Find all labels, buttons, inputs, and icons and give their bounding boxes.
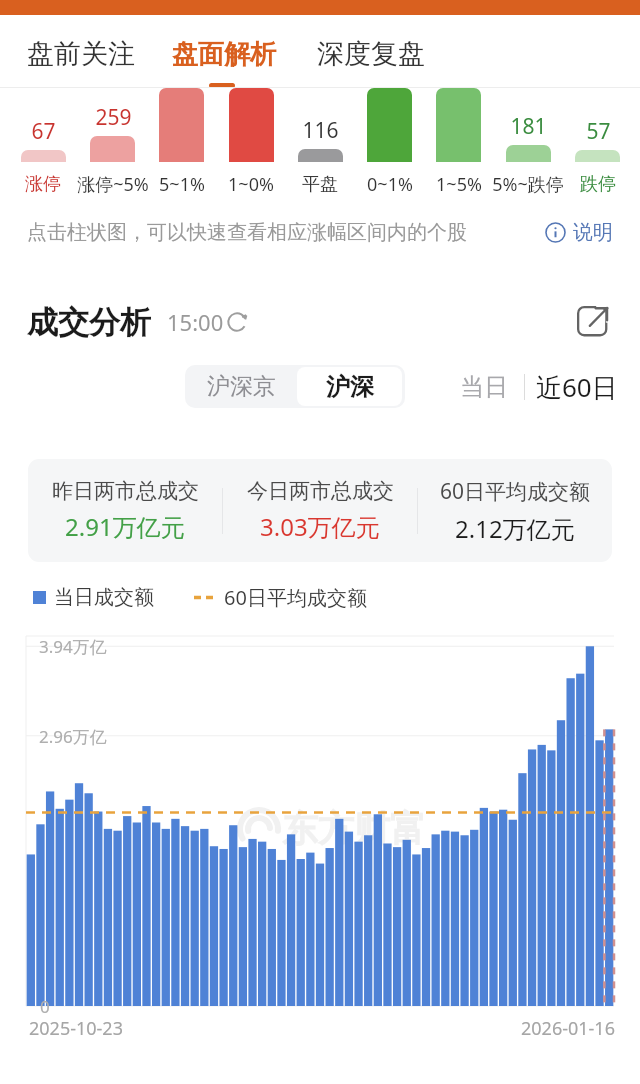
- staticText: 跌停: [580, 173, 616, 196]
- staticText: 60日平均成交额: [440, 477, 591, 506]
- button[interactable]: 深度复盘: [317, 30, 437, 78]
- staticText: 259: [95, 103, 132, 132]
- staticText: 0~1%: [367, 172, 413, 197]
- staticText: 点击柱状图，可以快速查看相应涨幅区间内的个股: [27, 220, 467, 245]
- button[interactable]: [9, 88, 78, 162]
- staticText: 盘前关注: [27, 37, 135, 71]
- staticText: 2.12万亿元: [455, 512, 575, 545]
- staticText: 东方财富: [282, 806, 426, 851]
- button[interactable]: 盘前关注: [27, 30, 147, 78]
- staticText: 2025-10-23: [29, 1016, 123, 1041]
- staticText: 沪深京: [207, 372, 276, 401]
- button[interactable]: [355, 88, 424, 162]
- staticText: 181: [510, 112, 547, 141]
- button[interactable]: 说明: [545, 220, 613, 245]
- staticText: 116: [302, 116, 339, 145]
- button[interactable]: [147, 88, 216, 162]
- staticText: 57: [586, 117, 611, 146]
- button[interactable]: [493, 88, 562, 162]
- staticText: 15:00: [167, 307, 224, 337]
- staticText: 3.94万亿: [39, 635, 107, 658]
- staticText: 2.96万亿: [39, 725, 107, 748]
- button[interactable]: Open in new window: [573, 302, 613, 342]
- button[interactable]: [216, 88, 285, 162]
- staticText: 说明: [573, 220, 613, 245]
- staticText: 1~0%: [228, 172, 274, 197]
- staticText: 平盘: [302, 173, 338, 196]
- staticText: 67: [31, 117, 56, 146]
- button[interactable]: [78, 88, 147, 162]
- staticText: 60日平均成交额: [224, 584, 367, 611]
- staticText: 涨停: [25, 173, 61, 196]
- button[interactable]: 近60日: [535, 367, 619, 407]
- staticText: 2.91万亿元: [65, 510, 185, 543]
- staticText: 1~5%: [436, 172, 482, 197]
- staticText: 沪深: [326, 372, 374, 402]
- button[interactable]: Refresh: [225, 310, 249, 334]
- staticText: 盘面解析: [172, 38, 276, 71]
- staticText: 近60日: [536, 369, 618, 405]
- staticText: 5~1%: [159, 172, 205, 197]
- button[interactable]: [286, 88, 355, 162]
- staticText: 深度复盘: [317, 37, 425, 71]
- button[interactable]: 当日: [455, 369, 513, 405]
- button[interactable]: 沪深京: [188, 367, 294, 406]
- button[interactable]: [424, 88, 493, 162]
- staticText: 成交分析: [27, 303, 151, 342]
- button[interactable]: 沪深: [297, 367, 402, 406]
- staticText: 0: [40, 995, 50, 1018]
- staticText: 昨日两市总成交: [52, 478, 199, 504]
- staticText: 3.03万亿元: [260, 510, 380, 543]
- button[interactable]: 盘面解析: [172, 30, 292, 78]
- staticText: 2026-01-16: [521, 1016, 615, 1041]
- button[interactable]: [563, 88, 632, 162]
- staticText: 今日两市总成交: [247, 478, 394, 504]
- staticText: 当日成交额: [54, 585, 154, 610]
- staticText: 涨停~5%: [77, 172, 149, 197]
- staticText: 当日: [460, 372, 508, 402]
- staticText: 5%~跌停: [492, 172, 564, 197]
